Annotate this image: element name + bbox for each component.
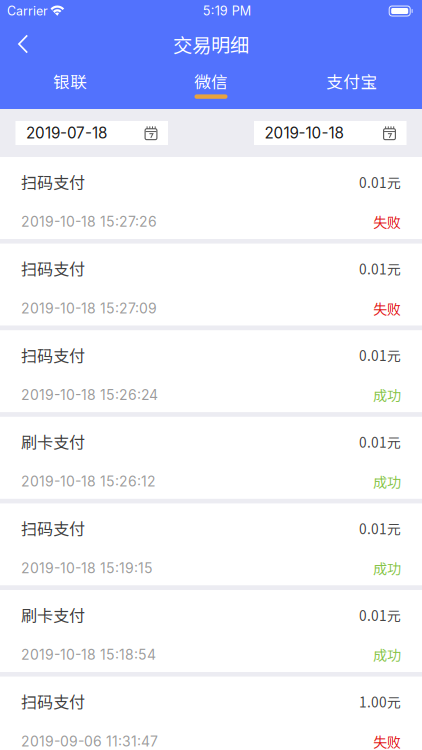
staticText: 交易明细 xyxy=(173,30,249,58)
staticText: 1.00元 xyxy=(359,692,401,711)
staticText: 2019-10-18 15:19:15 xyxy=(21,560,153,576)
staticText: 0.01元 xyxy=(359,345,401,365)
staticText: 失败 xyxy=(373,211,401,232)
staticText: 失败 xyxy=(373,731,401,750)
button[interactable]: 支付宝 xyxy=(281,66,422,109)
staticText: Carrier xyxy=(7,3,48,18)
button[interactable]: 银联 xyxy=(0,66,141,109)
staticText: 支付宝 xyxy=(326,69,377,93)
button[interactable]: 2019-07-18 xyxy=(15,121,168,145)
button[interactable]: 刷卡支付 xyxy=(0,590,422,672)
staticText: 银联 xyxy=(53,69,87,93)
staticText: 成功 xyxy=(373,471,401,492)
staticText: 0.01元 xyxy=(359,172,401,192)
staticText: 扫码支付 xyxy=(21,343,85,367)
button[interactable]: 扫码支付 xyxy=(0,503,422,585)
staticText: 0.01元 xyxy=(359,518,401,538)
staticText: 0.01元 xyxy=(359,259,401,278)
staticText: 0.01元 xyxy=(359,605,401,625)
staticText: 刷卡支付 xyxy=(21,430,85,453)
staticText: 扫码支付 xyxy=(21,690,85,713)
button[interactable]: 刷卡支付 xyxy=(0,417,422,499)
staticText: 5:19 PM xyxy=(203,3,251,19)
staticText: 成功 xyxy=(373,558,401,578)
staticText: 扫码支付 xyxy=(21,257,85,280)
button[interactable]: 扫码支付 xyxy=(0,330,422,412)
staticText: 成功 xyxy=(373,385,401,405)
staticText: 扫码支付 xyxy=(21,170,85,194)
staticText: 2019-10-18 15:26:12 xyxy=(21,473,156,490)
staticText: 2019-10-18 15:18:54 xyxy=(21,646,156,663)
staticText: 2019-09-06 11:31:47 xyxy=(21,733,158,750)
button[interactable]: 微信 xyxy=(141,66,281,109)
staticText: 2019-10-18 15:27:26 xyxy=(21,213,157,230)
staticText: 微信 xyxy=(194,69,228,93)
button[interactable]: 2019-10-18 xyxy=(254,121,406,145)
staticText: 2019-10-18 15:26:24 xyxy=(21,386,158,403)
button[interactable]: 扫码支付 xyxy=(0,157,422,239)
staticText: 2019-07-18 xyxy=(26,124,107,142)
staticText: 刷卡支付 xyxy=(21,603,85,627)
staticText: 2019-10-18 15:27:09 xyxy=(21,300,157,317)
staticText: 成功 xyxy=(373,644,401,665)
button[interactable]: 扫码支付 xyxy=(0,244,422,326)
staticText: 扫码支付 xyxy=(21,517,85,540)
button[interactable]: Back xyxy=(0,28,42,59)
button[interactable]: 扫码支付 xyxy=(0,677,422,750)
staticText: 2019-10-18 xyxy=(264,124,343,142)
staticText: 失败 xyxy=(373,298,401,319)
staticText: 0.01元 xyxy=(359,432,401,452)
